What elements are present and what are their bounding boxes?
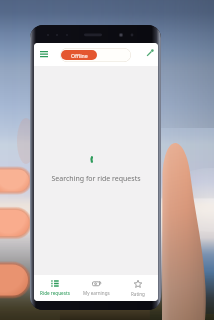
button[interactable]: My earnings bbox=[76, 275, 117, 301]
button[interactable]: Ride requests bbox=[34, 275, 76, 301]
button[interactable]: Offline bbox=[60, 48, 131, 62]
staticText: Rating bbox=[131, 291, 145, 297]
button[interactable]: Rating bbox=[117, 275, 158, 301]
staticText: Ride requests bbox=[40, 290, 70, 296]
button[interactable]: Open navigation menu bbox=[37, 46, 51, 60]
staticText: Searching for ride requests bbox=[51, 174, 141, 184]
button[interactable]: Edit bbox=[143, 46, 157, 60]
staticText: My earnings bbox=[83, 290, 110, 296]
staticText: Offline bbox=[71, 52, 88, 59]
